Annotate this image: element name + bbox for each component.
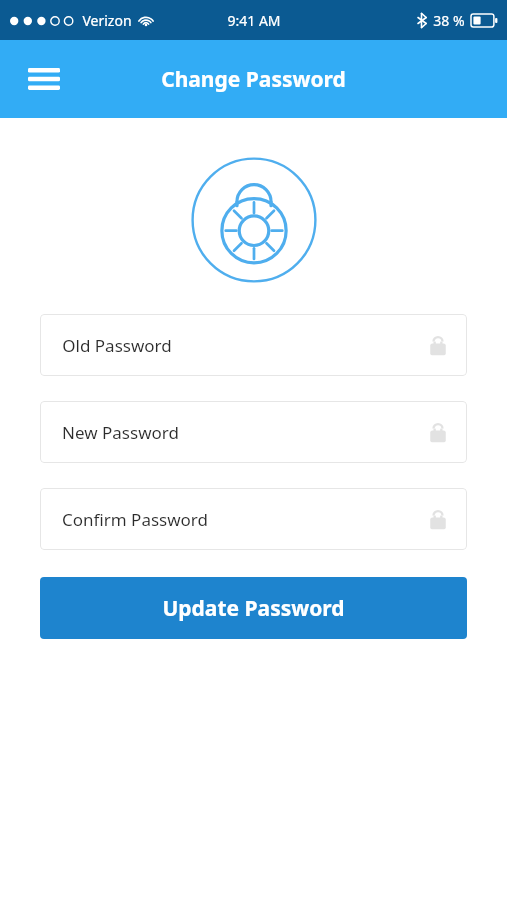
button[interactable]: Confirm Password [40,488,467,550]
staticText: 9:41 AM [227,11,281,30]
button[interactable]: Old Password [40,314,467,376]
button[interactable]: Update Password [40,577,467,639]
staticText: Old Password [62,334,172,357]
staticText: Verizon [82,11,132,30]
staticText: Change Password [161,65,346,94]
button[interactable]: New Password [40,401,467,463]
staticText: 38 % [433,11,465,30]
staticText: Confirm Password [62,508,208,531]
button[interactable]: Open navigation menu [18,53,70,105]
staticText: New Password [62,421,179,444]
staticText: Update Password [162,594,345,623]
